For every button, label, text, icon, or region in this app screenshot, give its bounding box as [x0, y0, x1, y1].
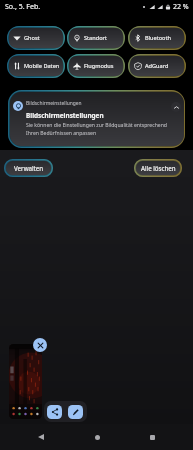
staticText: Ghost	[24, 34, 40, 42]
staticText: Flugmodus	[84, 62, 114, 70]
button[interactable]: AdGuard	[130, 56, 184, 76]
button[interactable]: Edit	[68, 405, 83, 419]
button[interactable]: Collapse	[171, 102, 181, 112]
staticText: Bildschirmeinstellungen	[26, 111, 104, 120]
button[interactable]: Verwalten	[6, 161, 51, 175]
staticText: Verwalten	[14, 164, 44, 172]
button[interactable]: Mobile Daten	[9, 56, 63, 76]
button[interactable]: Recent apps	[137, 424, 167, 450]
button[interactable]: Screenshot preview	[9, 344, 42, 419]
button[interactable]: Flugmodus	[69, 56, 123, 76]
staticText: 22 %	[173, 2, 189, 12]
button[interactable]: Close screenshot	[33, 338, 47, 352]
button[interactable]: Home	[82, 424, 112, 450]
button[interactable]: Bluetooth	[130, 28, 184, 48]
staticText: Standort	[84, 34, 107, 42]
button[interactable]: Alle löschen	[136, 161, 180, 175]
staticText: Mobile Daten	[24, 62, 60, 70]
staticText: Bildschirmeinstellungen	[26, 100, 82, 107]
staticText: Alle löschen	[141, 164, 176, 172]
staticText: Bluetooth	[145, 34, 171, 42]
button[interactable]: Share	[47, 405, 62, 419]
staticText: AdGuard	[145, 62, 169, 70]
staticText: Sie können die Einstellungen zur Bildqua…	[26, 122, 184, 137]
button[interactable]: Ghost	[9, 28, 63, 48]
button[interactable]: Collapse	[10, 92, 184, 146]
staticText: So., 5. Feb.	[5, 2, 41, 12]
button[interactable]: Back	[26, 424, 56, 450]
button[interactable]: Standort	[69, 28, 123, 48]
